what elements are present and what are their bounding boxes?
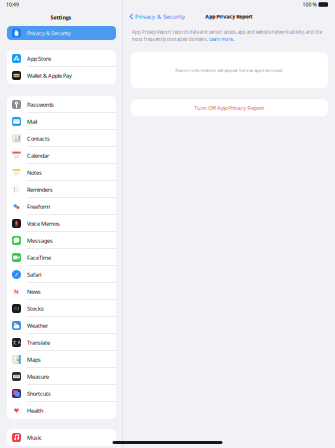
button[interactable]: Turn Off App Privacy Report bbox=[123, 99, 335, 116]
staticText: Health bbox=[27, 407, 43, 414]
button[interactable]: Stocks bbox=[7, 300, 116, 317]
button[interactable]: Music bbox=[7, 429, 116, 446]
button[interactable]: Freeform bbox=[7, 198, 116, 215]
staticText: Mail bbox=[27, 118, 37, 125]
staticText: Privacy & Security bbox=[27, 29, 71, 37]
staticText: Wallet & Apple Pay bbox=[27, 72, 72, 79]
button[interactable]: Weather bbox=[7, 317, 116, 334]
staticText: FaceTime bbox=[27, 254, 51, 261]
button[interactable]: Maps bbox=[7, 351, 116, 368]
staticText: Music bbox=[27, 434, 42, 441]
button[interactable]: Measure bbox=[7, 368, 116, 385]
staticText: A bbox=[18, 339, 21, 346]
button[interactable]: Reminders bbox=[7, 181, 116, 198]
button[interactable]: Contacts bbox=[7, 130, 116, 147]
staticText: Messages bbox=[27, 237, 53, 244]
staticText: Stocks bbox=[27, 305, 44, 312]
button[interactable]: 文 bbox=[7, 334, 116, 351]
staticText: Settings bbox=[50, 14, 71, 21]
button[interactable]: Voice Memos bbox=[7, 215, 116, 232]
staticText: most frequently contacted domains. bbox=[132, 36, 208, 42]
staticText: 10:49 bbox=[6, 1, 19, 8]
staticText: Shortcuts bbox=[27, 390, 51, 397]
staticText: 文 bbox=[12, 340, 17, 345]
button[interactable]: Learn more... bbox=[208, 36, 235, 42]
button[interactable]: Shortcuts bbox=[7, 385, 116, 402]
button[interactable]: FaceTime bbox=[7, 249, 116, 266]
button[interactable]: Passwords bbox=[7, 96, 116, 113]
staticText: Passwords bbox=[27, 101, 54, 108]
staticText: Safari bbox=[27, 271, 41, 278]
button[interactable]: Wallet & Apple Pay bbox=[7, 67, 116, 84]
staticText: Report information will appear here as a… bbox=[175, 67, 283, 73]
button[interactable]: Notes bbox=[7, 164, 116, 181]
staticText: Translate bbox=[27, 339, 50, 346]
button[interactable]: Health bbox=[7, 402, 116, 419]
staticText: Learn more... bbox=[209, 36, 235, 42]
button[interactable]: N bbox=[7, 283, 116, 300]
button[interactable]: Calendar bbox=[7, 147, 116, 164]
staticText: Privacy & Security bbox=[135, 12, 185, 21]
button[interactable]: Privacy & Security bbox=[0, 26, 122, 40]
staticText: Contacts bbox=[27, 135, 50, 142]
staticText: News bbox=[27, 288, 41, 295]
staticText: Weather bbox=[27, 322, 48, 329]
staticText: N bbox=[14, 287, 19, 295]
button[interactable]: Mail bbox=[7, 113, 116, 130]
staticText: App Privacy Report bbox=[205, 13, 252, 20]
staticText: App Privacy Report records data and sens… bbox=[132, 29, 322, 35]
staticText: 100 % bbox=[302, 1, 316, 8]
staticText: Notes bbox=[27, 169, 42, 176]
staticText: Reminders bbox=[27, 186, 53, 193]
staticText: Measure bbox=[27, 373, 49, 380]
staticText: App Store bbox=[27, 55, 51, 62]
staticText: Freeform bbox=[27, 203, 50, 210]
staticText: Maps bbox=[27, 356, 41, 363]
staticText: Calendar bbox=[27, 152, 49, 159]
button[interactable]: Safari bbox=[7, 266, 116, 283]
button[interactable]: App Store bbox=[7, 50, 116, 67]
button[interactable]: Messages bbox=[7, 232, 116, 249]
button[interactable]: Privacy & Security bbox=[123, 9, 189, 24]
staticText: Turn Off App Privacy Report bbox=[194, 104, 264, 111]
staticText: Voice Memos bbox=[27, 220, 60, 227]
